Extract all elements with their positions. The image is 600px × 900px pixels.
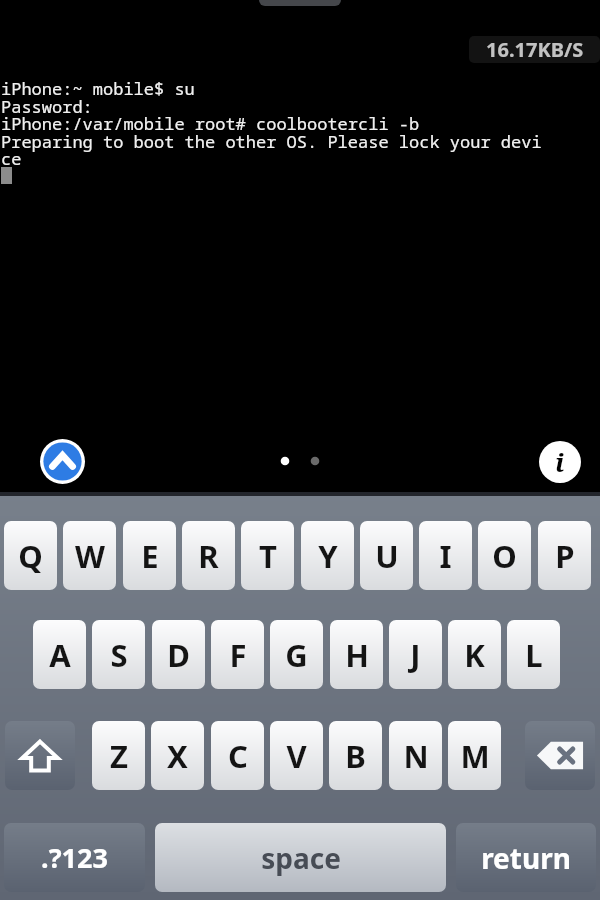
- button[interactable]: D: [152, 620, 205, 689]
- button[interactable]: C: [211, 721, 264, 790]
- staticText: I: [439, 535, 452, 577]
- staticText: H: [345, 634, 369, 676]
- staticText: P: [555, 535, 575, 577]
- staticText: F: [229, 634, 247, 676]
- staticText: E: [141, 535, 159, 577]
- staticText: iPhone:/var/mobile root# coolbootercli -…: [1, 112, 420, 135]
- staticText: S: [110, 634, 128, 676]
- button[interactable]: X: [151, 721, 204, 790]
- button[interactable]: V: [270, 721, 323, 790]
- button[interactable]: B: [329, 721, 382, 790]
- staticText: K: [464, 634, 485, 676]
- staticText: L: [525, 634, 543, 676]
- staticText: return: [481, 839, 571, 877]
- staticText: V: [286, 735, 307, 777]
- staticText: O: [492, 535, 517, 577]
- button[interactable]: Scroll up: [40, 439, 85, 484]
- staticText: Q: [18, 535, 43, 577]
- staticText: U: [375, 535, 399, 577]
- button[interactable]: M: [448, 721, 501, 790]
- button[interactable]: S: [92, 620, 145, 689]
- button[interactable]: O: [478, 521, 531, 590]
- staticText: X: [167, 735, 188, 777]
- staticText: D: [167, 634, 190, 676]
- button[interactable]: .?123: [4, 823, 145, 892]
- button[interactable]: I: [419, 521, 472, 590]
- staticText: T: [259, 535, 277, 577]
- staticText: Preparing to boot the other OS. Please l…: [1, 130, 542, 153]
- button[interactable]: E: [123, 521, 176, 590]
- staticText: Z: [110, 735, 128, 777]
- staticText: J: [410, 634, 421, 676]
- button[interactable]: L: [507, 620, 560, 689]
- staticText: G: [285, 634, 308, 676]
- staticText: M: [460, 735, 490, 777]
- button[interactable]: Shift: [5, 721, 75, 790]
- staticText: i: [555, 444, 565, 479]
- button[interactable]: K: [448, 620, 501, 689]
- button[interactable]: Info: [539, 441, 581, 483]
- staticText: A: [49, 634, 71, 676]
- staticText: C: [228, 735, 248, 777]
- staticText: iPhone:~ mobile$ su: [1, 77, 195, 100]
- staticText: W: [75, 535, 105, 577]
- button[interactable]: Q: [4, 521, 57, 590]
- button[interactable]: F: [211, 620, 264, 689]
- button[interactable]: Y: [301, 521, 354, 590]
- staticText: B: [345, 735, 366, 777]
- button[interactable]: P: [538, 521, 591, 590]
- button[interactable]: return: [456, 823, 596, 892]
- staticText: Password:: [1, 95, 93, 118]
- staticText: ce: [1, 147, 22, 170]
- staticText: N: [403, 735, 429, 777]
- button[interactable]: A: [33, 620, 86, 689]
- button[interactable]: space: [155, 823, 446, 892]
- button[interactable]: N: [389, 721, 442, 790]
- button[interactable]: J: [389, 620, 442, 689]
- button[interactable]: G: [270, 620, 323, 689]
- staticText: R: [198, 535, 219, 577]
- button[interactable]: R: [182, 521, 235, 590]
- button[interactable]: Z: [92, 721, 145, 790]
- button[interactable]: U: [360, 521, 413, 590]
- staticText: .?123: [41, 839, 108, 876]
- staticText: space: [261, 839, 341, 877]
- button[interactable]: H: [330, 620, 383, 689]
- button[interactable]: Backspace: [525, 721, 595, 790]
- button[interactable]: T: [241, 521, 294, 590]
- staticText: 16.17KB/S: [486, 36, 584, 63]
- button[interactable]: W: [63, 521, 116, 590]
- staticText: Y: [318, 535, 338, 577]
